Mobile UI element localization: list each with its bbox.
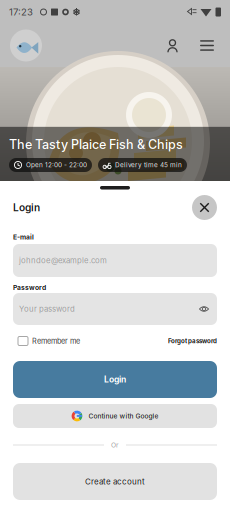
button[interactable]: Forgot password — [168, 337, 217, 345]
staticText: Remember me — [32, 337, 80, 345]
staticText: Delivery time 45 min — [115, 161, 182, 169]
button[interactable]: Remember me — [13, 336, 80, 345]
button[interactable]: Show password — [199, 304, 209, 314]
button[interactable]: Account — [161, 34, 184, 57]
staticText: 17:23 — [9, 6, 33, 18]
staticText: Create account — [85, 477, 145, 486]
button[interactable]: Login — [13, 361, 217, 398]
staticText: Your password — [19, 304, 75, 314]
button[interactable]: Menu — [196, 34, 218, 56]
staticText: Login — [13, 201, 40, 214]
button[interactable]: Close — [192, 195, 217, 220]
staticText: E-mail — [13, 233, 34, 241]
button[interactable]: Continue with Google — [13, 404, 217, 428]
staticText: Or — [111, 441, 119, 449]
staticText: Login — [104, 374, 126, 385]
staticText: The Tasty Plaice Fish & Chips — [9, 137, 183, 152]
staticText: johndoe@example.com — [19, 256, 107, 265]
staticText: Forgot password — [168, 337, 217, 345]
staticText: Password — [13, 283, 46, 292]
staticText: Open 12:00 - 22:00 — [26, 161, 87, 169]
button[interactable]: Create account — [13, 463, 217, 500]
staticText: Continue with Google — [88, 412, 158, 420]
